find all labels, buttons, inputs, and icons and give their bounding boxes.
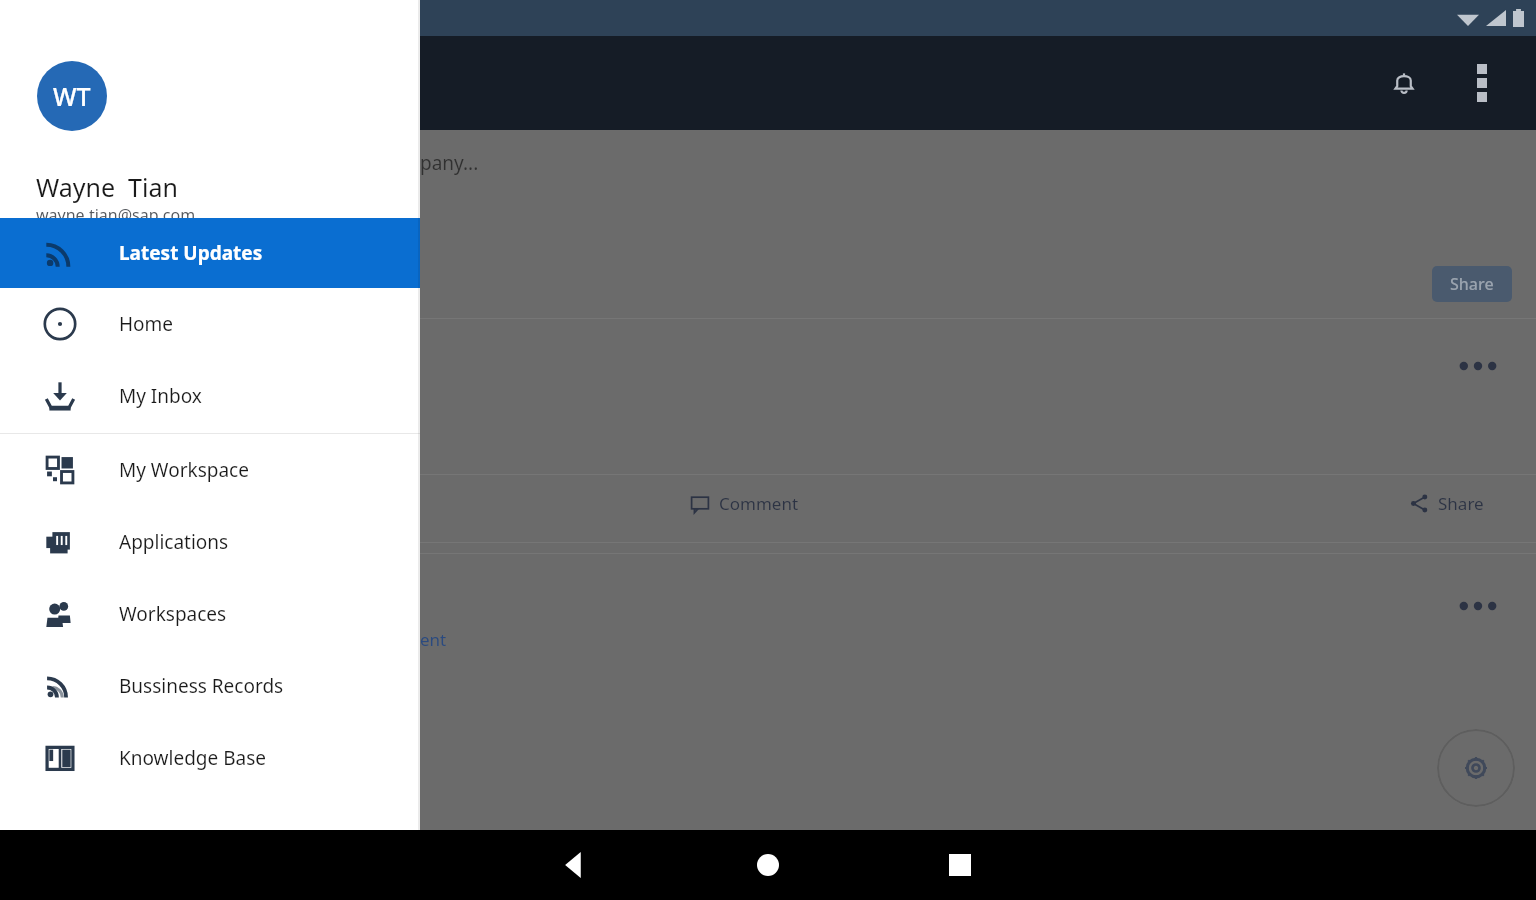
- staticText: pany...: [420, 150, 479, 176]
- button[interactable]: My Inbox: [0, 360, 420, 432]
- button[interactable]: Comment: [690, 492, 799, 515]
- button[interactable]: Home: [0, 288, 420, 360]
- staticText: Workspaces: [119, 601, 227, 627]
- button[interactable]: My Workspace: [0, 434, 420, 506]
- staticText: Knowledge Base: [119, 745, 267, 771]
- button[interactable]: WT: [37, 61, 107, 131]
- button[interactable]: Applications: [0, 506, 420, 578]
- staticText: Share: [1450, 273, 1494, 295]
- staticText: Wayne Tian: [36, 170, 178, 204]
- staticText: My Workspace: [119, 457, 249, 483]
- button[interactable]: Create: [1437, 729, 1515, 807]
- staticText: Comment: [719, 492, 799, 515]
- button[interactable]: Post options: [1452, 580, 1504, 632]
- staticText: ent: [420, 628, 447, 651]
- button[interactable]: Home: [733, 830, 803, 900]
- staticText: My Inbox: [119, 383, 202, 409]
- staticText: Home: [119, 311, 174, 337]
- staticText: wayne.tian@sap.com: [36, 204, 196, 226]
- button[interactable]: Notifications: [1372, 51, 1436, 115]
- button[interactable]: More options: [1450, 51, 1514, 115]
- button[interactable]: Latest Updates: [0, 218, 420, 288]
- button[interactable]: Post options: [1452, 340, 1504, 392]
- button[interactable]: Share: [1432, 266, 1512, 302]
- button[interactable]: Back: [540, 830, 610, 900]
- button[interactable]: Workspaces: [0, 578, 420, 650]
- staticText: Share: [1438, 492, 1484, 515]
- button[interactable]: Share: [1410, 492, 1484, 515]
- button[interactable]: Knowledge Base: [0, 722, 420, 794]
- button[interactable]: Bussiness Records: [0, 650, 420, 722]
- staticText: Latest Updates: [119, 240, 263, 266]
- button[interactable]: Recent apps: [925, 830, 995, 900]
- staticText: WT: [53, 79, 91, 113]
- staticText: Applications: [119, 529, 229, 555]
- staticText: Bussiness Records: [119, 673, 284, 699]
